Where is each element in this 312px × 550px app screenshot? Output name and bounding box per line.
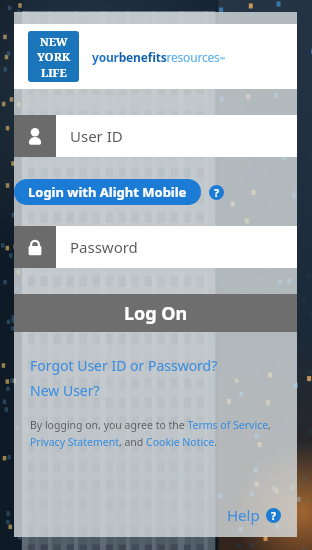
staticText: LIFE (41, 65, 67, 80)
staticText: YORK (37, 49, 71, 65)
staticText: ? (214, 186, 220, 200)
staticText: Help (227, 505, 260, 525)
button[interactable]: Help (227, 505, 281, 525)
staticText: User ID (70, 126, 123, 146)
staticText: ? (271, 509, 277, 523)
staticText: Password (70, 237, 138, 257)
staticText: New User? (30, 381, 100, 400)
staticText: By logging on, you agree to the Terms of… (30, 418, 289, 449)
button[interactable]: Password (14, 226, 297, 268)
button[interactable]: Login with Alight Mobile (14, 179, 201, 205)
button[interactable]: Log On (14, 294, 297, 332)
staticText: Forgot User ID or Password? (30, 356, 218, 375)
staticText: Login with Alight Mobile (28, 183, 187, 201)
staticText: Log On (124, 301, 188, 326)
button[interactable]: Help (266, 508, 281, 523)
button[interactable]: Help about Alight Mobile login (209, 185, 224, 200)
staticText: yourbenefitsresources™ (92, 49, 225, 65)
button[interactable]: Forgot User ID or Password? (30, 356, 218, 375)
staticText: NEW (40, 34, 68, 49)
button[interactable]: User ID (14, 115, 297, 157)
button[interactable]: New User? (30, 381, 100, 400)
